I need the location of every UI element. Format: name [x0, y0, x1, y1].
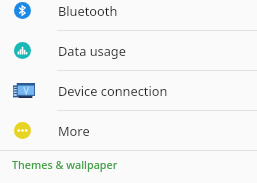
staticText: Bluetooth — [58, 2, 118, 19]
button[interactable]: More — [0, 110, 257, 150]
button[interactable]: Data usage — [0, 30, 257, 70]
staticText: Device connection — [58, 82, 168, 99]
button[interactable]: Bluetooth — [0, 0, 257, 30]
staticText: More — [58, 122, 90, 139]
button[interactable]: Themes & wallpaper — [0, 150, 257, 183]
button[interactable]: Device connection — [0, 70, 257, 110]
staticText: Themes & wallpaper — [12, 157, 118, 172]
staticText: Data usage — [58, 42, 126, 59]
